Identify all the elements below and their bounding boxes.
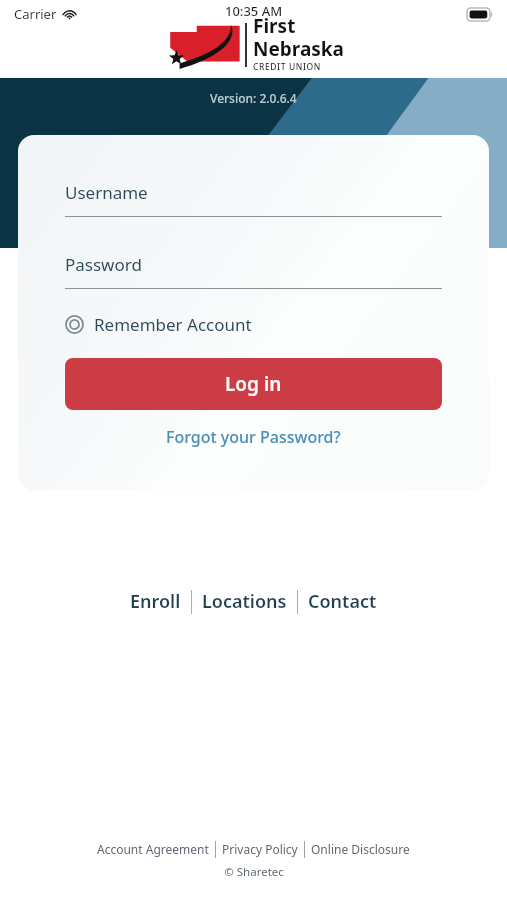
staticText: Username [65,181,148,204]
staticText: Contact [308,589,377,614]
staticText: Nebraska [253,36,344,62]
button[interactable]: Locations [192,583,297,620]
button[interactable]: Username [65,181,442,217]
staticText: Version: 2.0.6.4 [210,90,297,106]
staticText: Account Agreement [97,841,209,857]
button[interactable]: Online Disclosure [305,838,416,860]
staticText: Remember Account [94,313,252,336]
staticText: First [253,13,296,39]
button[interactable]: Account Agreement [91,838,215,860]
staticText: CREDIT UNION [253,61,322,73]
staticText: Online Disclosure [311,841,410,857]
button[interactable]: Remember Account [65,313,252,336]
staticText: 10:35 AM [225,2,283,20]
staticText: Privacy Policy [222,841,298,857]
button[interactable]: Log in [65,358,442,410]
staticText: Locations [202,589,287,614]
staticText: Log in [225,371,282,397]
button[interactable]: Enroll [120,583,191,620]
button[interactable]: Contact [298,583,387,620]
button[interactable]: Forgot your Password? [158,420,349,454]
staticText: Forgot your Password? [166,426,341,448]
button[interactable]: Password [65,253,442,289]
button[interactable]: Privacy Policy [216,838,304,860]
staticText: © Sharetec [224,864,284,880]
staticText: Password [65,253,142,276]
staticText: Carrier [14,5,57,23]
staticText: Enroll [130,589,181,614]
